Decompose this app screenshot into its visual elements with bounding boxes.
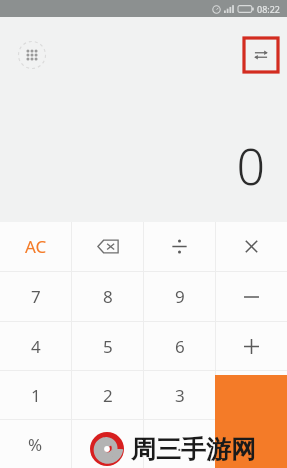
- staticText: 7: [31, 285, 41, 308]
- button[interactable]: 6: [144, 322, 215, 370]
- button[interactable]: 4: [0, 322, 71, 370]
- button[interactable]: 1: [0, 371, 71, 419]
- staticText: .: [177, 433, 182, 456]
- button[interactable]: %: [0, 420, 71, 468]
- button[interactable]: 3: [144, 371, 215, 419]
- staticText: 8: [103, 285, 113, 308]
- button[interactable]: 9: [144, 272, 215, 321]
- staticText: 3: [175, 384, 185, 407]
- staticText: 周三手游网: [131, 434, 256, 465]
- button[interactable]: AC: [0, 222, 71, 271]
- button[interactable]: 0: [72, 420, 143, 468]
- button[interactable]: [216, 222, 287, 271]
- button[interactable]: [216, 272, 287, 321]
- button[interactable]: Unit converter: [244, 38, 278, 72]
- button[interactable]: [216, 322, 287, 370]
- staticText: 0: [236, 132, 265, 200]
- staticText: %: [28, 433, 43, 456]
- staticText: AC: [25, 235, 47, 258]
- button[interactable]: Equals: [215, 375, 287, 468]
- staticText: 1: [31, 384, 41, 407]
- staticText: 08:22: [257, 3, 281, 15]
- button[interactable]: .: [144, 420, 215, 468]
- button[interactable]: Backspace: [72, 222, 143, 271]
- button[interactable]: 5: [72, 322, 143, 370]
- staticText: 2: [103, 384, 113, 407]
- staticText: 0: [103, 433, 113, 456]
- staticText: 9: [175, 285, 185, 308]
- button[interactable]: 7: [0, 272, 71, 321]
- button[interactable]: Apps: [17, 40, 47, 70]
- staticText: 4: [31, 335, 41, 358]
- button[interactable]: 2: [72, 371, 143, 419]
- button[interactable]: [144, 222, 215, 271]
- staticText: 5: [103, 335, 113, 358]
- button[interactable]: 8: [72, 272, 143, 321]
- staticText: 6: [175, 335, 185, 358]
